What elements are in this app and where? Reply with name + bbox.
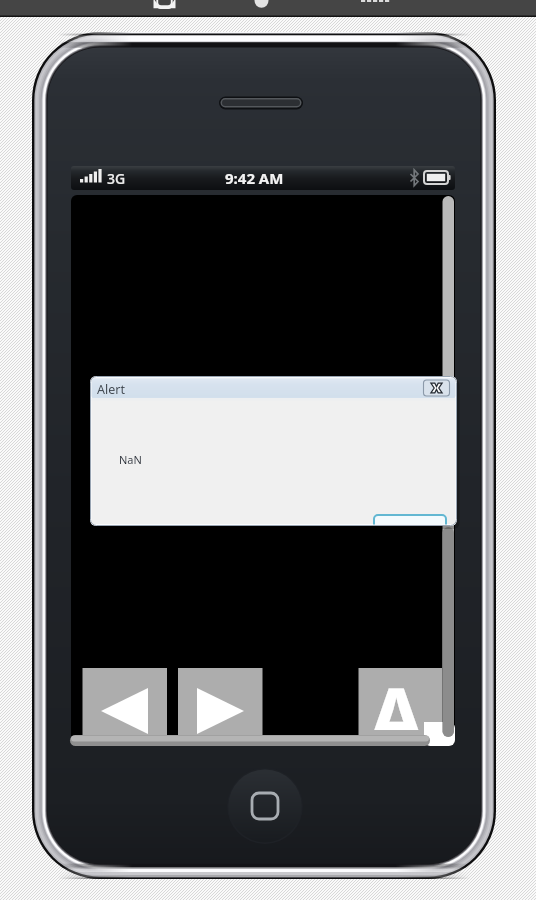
- button[interactable]: Close: [423, 380, 450, 397]
- staticText: 9:42 AM: [225, 168, 284, 188]
- staticText: A: [369, 668, 424, 730]
- button[interactable]: Back: [82, 668, 167, 737]
- button[interactable]: Text size: [358, 668, 442, 737]
- staticText: 3G: [107, 169, 126, 188]
- button[interactable]: Forward: [178, 668, 263, 737]
- button[interactable]: OK: [374, 515, 446, 525]
- staticText: NaN: [119, 452, 142, 467]
- staticText: Alert: [97, 381, 125, 398]
